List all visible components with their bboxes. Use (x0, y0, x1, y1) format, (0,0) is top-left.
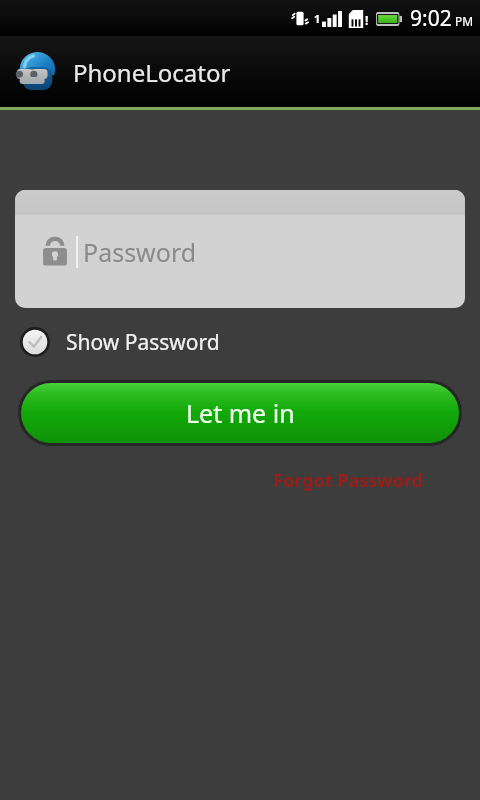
staticText: Show Password (66, 328, 220, 357)
staticText: PM (455, 13, 474, 29)
staticText: Forgot Password (273, 468, 423, 493)
staticText: ! (365, 12, 369, 28)
staticText: 9:02 (410, 4, 452, 33)
button[interactable]: Password (15, 190, 465, 308)
staticText: PhoneLocator (73, 56, 231, 89)
staticText: Let me in (186, 396, 295, 430)
staticText: 1 (314, 11, 321, 26)
button[interactable]: Let me in (21, 383, 459, 443)
button[interactable]: Forgot Password (271, 464, 425, 497)
button[interactable]: Show Password (20, 322, 460, 362)
staticText: Password (83, 235, 197, 269)
